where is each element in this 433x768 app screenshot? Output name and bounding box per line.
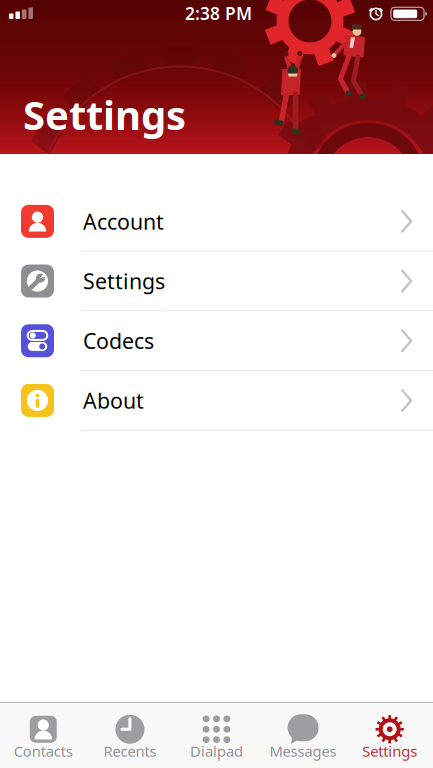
staticText: Settings — [83, 267, 165, 295]
staticText: Messages — [270, 741, 337, 761]
staticText: Settings — [362, 741, 417, 761]
staticText: Contacts — [14, 741, 73, 761]
button[interactable]: About — [0, 371, 433, 431]
button[interactable]: Dialpad — [173, 705, 260, 766]
staticText: Codecs — [83, 327, 154, 355]
staticText: Settings — [23, 88, 186, 141]
button[interactable]: Settings — [0, 252, 433, 311]
staticText: About — [83, 386, 144, 415]
staticText: 2:38 PM — [185, 2, 252, 25]
button[interactable]: Contacts — [0, 705, 87, 766]
staticText: Dialpad — [190, 741, 243, 761]
button[interactable]: Account — [0, 192, 433, 252]
button[interactable]: Messages — [260, 705, 346, 766]
staticText: Account — [83, 207, 164, 235]
button[interactable]: Recents — [87, 705, 173, 766]
button[interactable]: Settings — [346, 705, 433, 766]
button[interactable]: Codecs — [0, 311, 433, 371]
staticText: Recents — [103, 741, 156, 761]
